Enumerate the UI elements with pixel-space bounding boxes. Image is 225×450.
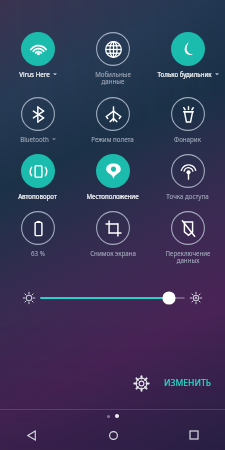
button[interactable]: Mobile data bbox=[75, 30, 150, 86]
staticText: Автоповорот bbox=[18, 192, 57, 200]
button[interactable]: Recents bbox=[181, 422, 207, 448]
button[interactable]: ИЗМЕНИТЬ bbox=[160, 373, 215, 393]
button[interactable]: Do not disturb bbox=[150, 30, 225, 78]
button[interactable]: Hotspot bbox=[150, 152, 225, 200]
button[interactable]: Settings bbox=[128, 370, 154, 396]
staticText: Переключение данных bbox=[165, 249, 211, 265]
button[interactable]: Wi-Fi bbox=[0, 30, 75, 78]
staticText: Точка доступа bbox=[166, 192, 209, 200]
staticText: Снимок экрана bbox=[90, 249, 136, 257]
staticText: Местоположение bbox=[86, 192, 139, 200]
button[interactable]: Battery saver bbox=[0, 209, 75, 257]
button[interactable]: Home bbox=[100, 422, 126, 448]
staticText: Фонарик bbox=[174, 135, 201, 143]
button[interactable]: Data switching bbox=[150, 209, 225, 265]
button[interactable]: Brightness bbox=[41, 287, 184, 309]
staticText: Bluetooth bbox=[20, 135, 49, 143]
button[interactable]: Location bbox=[75, 152, 150, 200]
button[interactable]: Auto rotate bbox=[0, 152, 75, 200]
staticText: 63 % bbox=[31, 249, 45, 257]
staticText: Только будильник bbox=[157, 70, 212, 78]
staticText: Virus Here bbox=[19, 70, 50, 78]
button[interactable]: Airplane mode bbox=[75, 95, 150, 143]
button[interactable]: Back bbox=[18, 422, 44, 448]
button[interactable]: Screenshot bbox=[75, 209, 150, 257]
button[interactable]: Flashlight bbox=[150, 95, 225, 143]
staticText: Режим полета bbox=[91, 135, 134, 143]
staticText: Мобильные данные bbox=[95, 70, 131, 86]
button[interactable]: Bluetooth bbox=[0, 95, 75, 143]
staticText: ИЗМЕНИТЬ bbox=[164, 377, 211, 389]
